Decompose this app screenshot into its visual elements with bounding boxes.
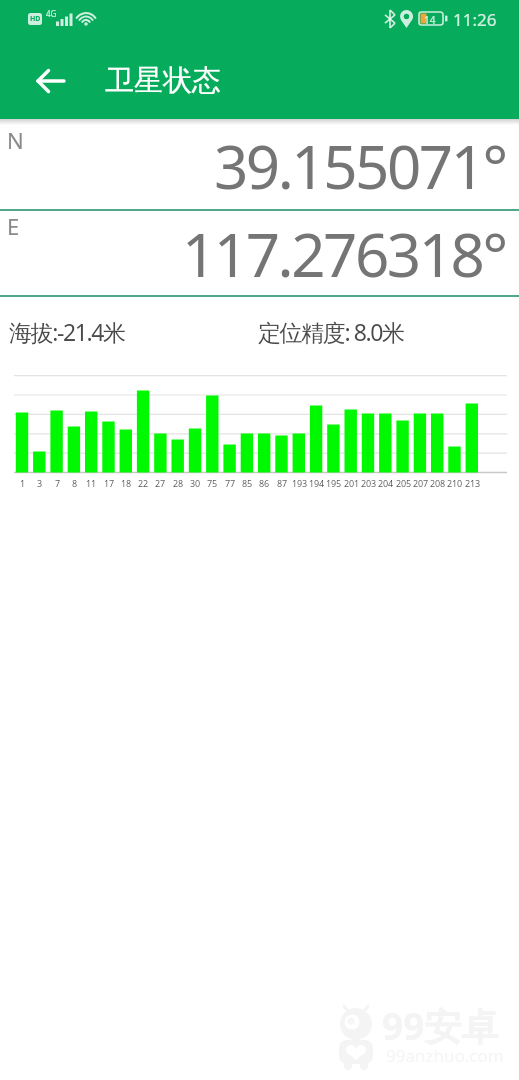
staticText: 22	[138, 477, 148, 489]
staticText: 3	[37, 477, 42, 489]
staticText: 205	[396, 477, 411, 489]
button[interactable]	[29, 59, 73, 103]
staticText: 204	[378, 477, 393, 489]
staticText: 75	[207, 477, 217, 489]
staticText: HD	[30, 14, 41, 24]
staticText: 193	[292, 477, 307, 489]
staticText: E	[7, 211, 20, 241]
staticText: N	[7, 125, 24, 155]
staticText: 海拔:-21.4米	[9, 316, 125, 347]
staticText: 8	[72, 477, 77, 489]
staticText: 87	[277, 477, 287, 489]
staticText: 201	[344, 477, 359, 489]
staticText: 1	[20, 477, 25, 489]
staticText: 7	[55, 477, 60, 489]
staticText: 85	[242, 477, 252, 489]
staticText: 117.276318°	[182, 213, 506, 295]
staticText: 4G	[46, 8, 57, 19]
staticText: 86	[259, 477, 269, 489]
staticText: 99anzhuo.com	[386, 1044, 504, 1067]
staticText: 213	[465, 477, 480, 489]
staticText: 11:26	[453, 8, 497, 31]
staticText: 99安卓	[382, 1000, 499, 1051]
staticText: 14	[424, 13, 436, 27]
staticText: 195	[326, 477, 341, 489]
staticText: 210	[447, 477, 462, 489]
staticText: 207	[413, 477, 428, 489]
staticText: 定位精度: 8.0米	[258, 316, 404, 347]
staticText: 11	[86, 477, 96, 489]
staticText: 77	[225, 477, 235, 489]
staticText: 18	[121, 477, 131, 489]
staticText: 卫星状态	[105, 62, 221, 99]
staticText: 39.155071°	[214, 125, 506, 207]
staticText: 27	[155, 477, 165, 489]
staticText: 30	[190, 477, 200, 489]
staticText: 203	[361, 477, 376, 489]
staticText: 17	[104, 477, 114, 489]
staticText: 194	[309, 477, 324, 489]
staticText: 28	[173, 477, 183, 489]
staticText: 208	[430, 477, 445, 489]
